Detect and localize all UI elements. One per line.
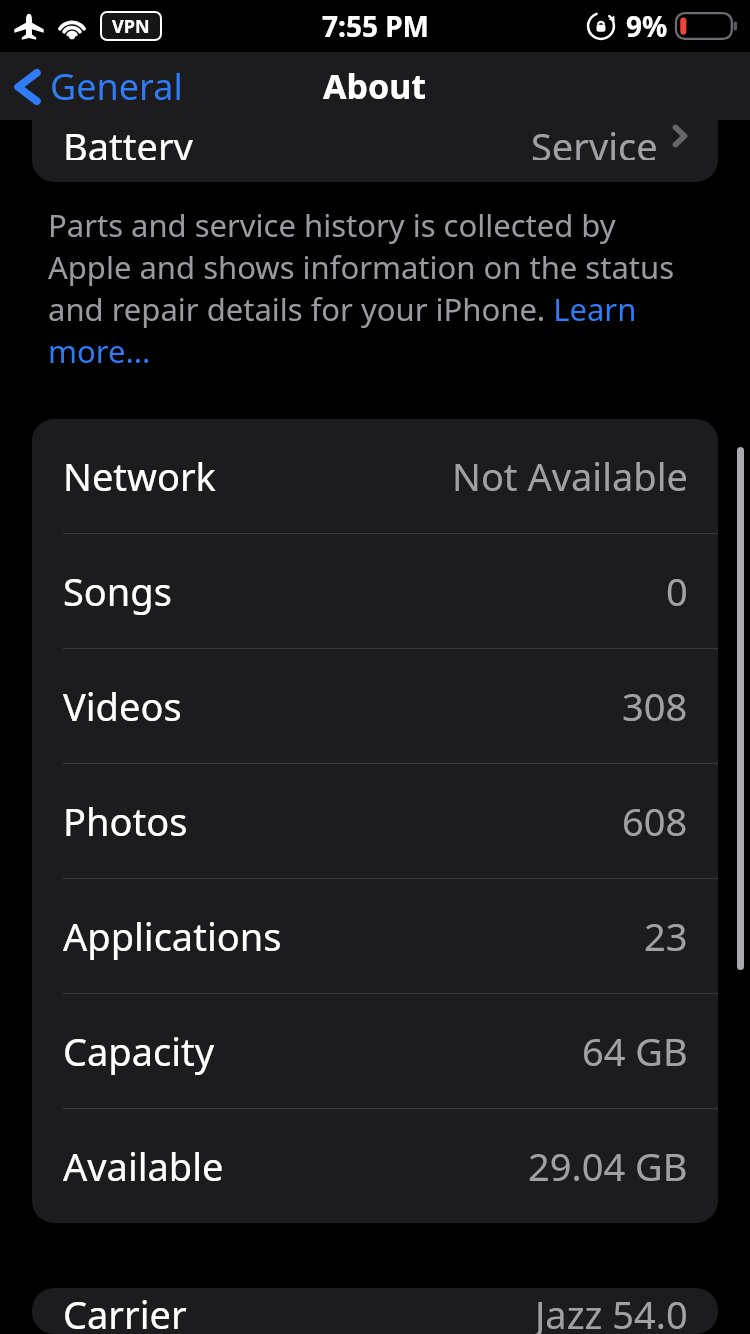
button[interactable]: Carrier — [32, 1288, 718, 1334]
staticText: Capacity — [63, 1025, 215, 1077]
staticText: 608 — [622, 795, 688, 847]
staticText: Parts and service history is collected b… — [48, 204, 702, 372]
button[interactable]: Capacity — [32, 994, 718, 1108]
button[interactable]: Videos — [32, 649, 718, 763]
button[interactable]: General — [0, 56, 197, 117]
staticText: Applications — [63, 910, 282, 962]
staticText: 23 — [644, 910, 688, 962]
staticText: Battery — [63, 120, 193, 160]
staticText: VPN — [112, 14, 150, 39]
staticText: Videos — [63, 680, 182, 732]
button[interactable]: Battery — [32, 120, 718, 160]
button[interactable]: Applications — [32, 879, 718, 993]
staticText: 9% — [626, 7, 668, 45]
staticText: 29.04 GB — [528, 1140, 688, 1192]
staticText: Carrier — [63, 1288, 187, 1334]
button[interactable]: Photos — [32, 764, 718, 878]
staticText: Not Available — [452, 450, 688, 502]
button[interactable]: Network — [32, 419, 718, 533]
staticText: Songs — [63, 565, 172, 617]
staticText: Service — [531, 120, 658, 160]
button[interactable]: Available — [32, 1109, 718, 1223]
button[interactable]: Songs — [32, 534, 718, 648]
staticText: About — [323, 63, 427, 109]
staticText: Photos — [63, 795, 188, 847]
staticText: General — [50, 62, 183, 111]
staticText: Network — [63, 450, 216, 502]
staticText: Available — [63, 1140, 224, 1192]
staticText: 7:55 PM — [322, 7, 429, 45]
staticText: 308 — [622, 680, 688, 732]
staticText: 0 — [666, 565, 688, 617]
staticText: 64 GB — [582, 1025, 688, 1077]
staticText: Jazz 54.0 — [535, 1288, 688, 1334]
